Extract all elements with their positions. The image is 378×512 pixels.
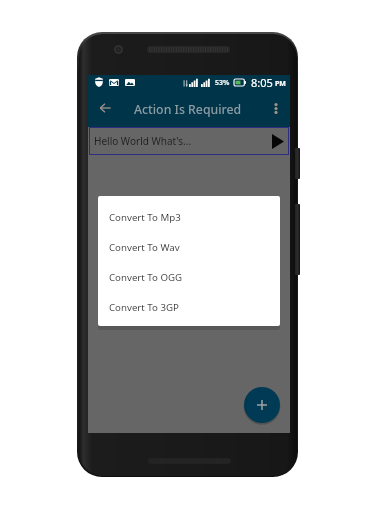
- staticText: PM: [275, 79, 286, 89]
- staticText: Convert To OGG: [109, 271, 183, 284]
- button[interactable]: Back: [92, 95, 118, 121]
- staticText: 53%: [215, 78, 230, 88]
- button[interactable]: Add: [244, 387, 280, 423]
- button[interactable]: Convert To Wav: [98, 232, 280, 262]
- button[interactable]: More options: [263, 95, 289, 121]
- staticText: 8:05: [251, 75, 273, 89]
- button[interactable]: Convert To OGG: [98, 262, 280, 292]
- staticText: Action Is Required: [134, 101, 242, 118]
- button[interactable]: Hello World What's...: [89, 127, 289, 155]
- staticText: Convert To Mp3: [109, 211, 181, 224]
- button[interactable]: Convert To 3GP: [98, 292, 280, 322]
- staticText: Hello World What's...: [94, 134, 192, 148]
- button[interactable]: Convert To Mp3: [98, 202, 280, 232]
- staticText: Convert To Wav: [109, 241, 180, 254]
- staticText: Convert To 3GP: [109, 301, 179, 314]
